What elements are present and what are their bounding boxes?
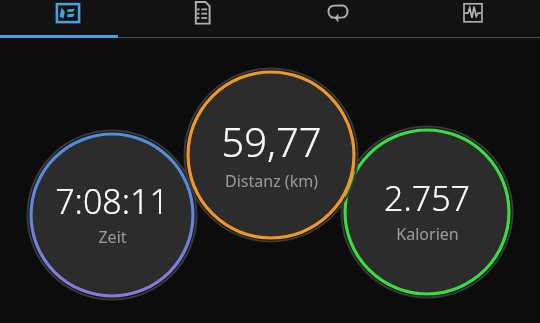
staticText: Zeit — [98, 226, 127, 248]
button[interactable]: Kalorien 2.757 — [341, 126, 513, 298]
staticText: Distanz (km) — [225, 170, 318, 192]
button[interactable]: Zeit 7:08:11 — [27, 130, 197, 300]
staticText: 59,77 — [221, 114, 322, 168]
staticText: 2.757 — [384, 175, 470, 221]
button[interactable]: Chart — [405, 0, 540, 36]
button[interactable]: Distanz 59,77 km — [184, 68, 358, 242]
staticText: 7:08:11 — [55, 178, 169, 224]
button[interactable]: Map — [0, 0, 135, 36]
staticText: Kalorien — [396, 223, 459, 245]
button[interactable]: List — [135, 0, 270, 36]
button[interactable]: Repeat — [270, 0, 405, 36]
